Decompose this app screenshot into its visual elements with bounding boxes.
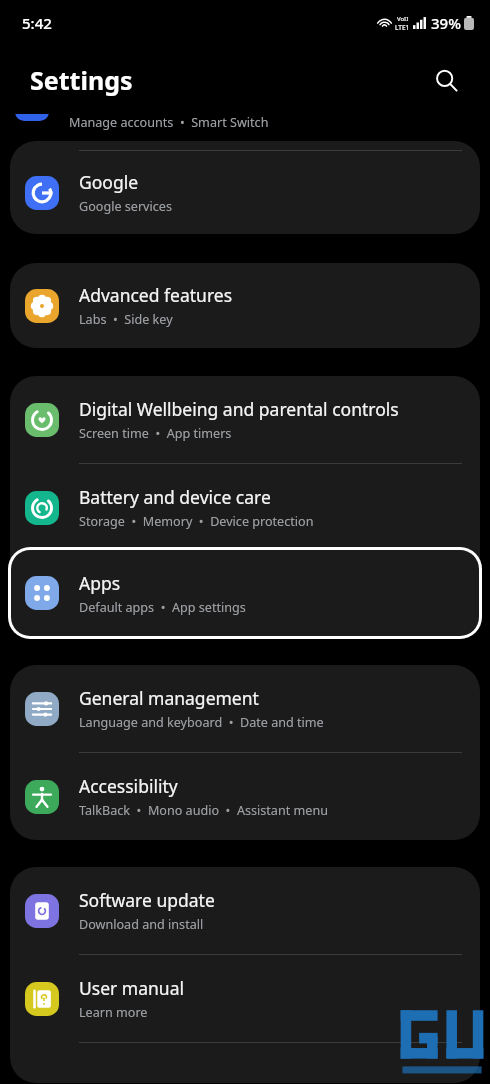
staticText: Language and keyboard • Date and time <box>79 714 324 731</box>
button[interactable]: Battery and device care <box>10 464 480 551</box>
staticText: Apps <box>79 573 121 597</box>
button[interactable]: Digital Wellbeing and parental controls <box>10 376 480 463</box>
staticText: 5:42 <box>22 13 52 33</box>
staticText: Apps <box>79 571 121 595</box>
button[interactable]: Software update <box>10 867 480 954</box>
staticText: Google <box>79 170 139 194</box>
staticText: Default apps • App settings <box>79 601 246 618</box>
staticText: Screen time • App timers <box>79 425 232 442</box>
button[interactable]: General management <box>10 665 480 752</box>
staticText: Battery and device care <box>79 485 271 509</box>
staticText: Labs • Side key <box>79 311 173 328</box>
staticText: Download and install <box>79 916 204 933</box>
staticText: Google services <box>79 198 172 215</box>
button[interactable]: Advanced features <box>10 263 480 348</box>
staticText: Digital Wellbeing and parental controls <box>79 397 399 421</box>
staticText: Accessibility <box>79 774 178 798</box>
button[interactable]: Accessibility <box>10 753 480 840</box>
button[interactable]: Apps <box>10 551 480 639</box>
staticText: VoII <box>397 15 409 23</box>
staticText: 39% <box>431 13 461 33</box>
staticText: General management <box>79 686 259 710</box>
staticText: LTE1 <box>395 23 410 32</box>
button[interactable]: Google <box>10 151 480 234</box>
staticText: TalkBack • Mono audio • Assistant menu <box>79 802 328 819</box>
staticText: User manual <box>79 976 184 1000</box>
staticText: Manage accounts • Smart Switch <box>69 114 269 131</box>
button[interactable]: Apps <box>11 550 479 636</box>
staticText: Default apps • App settings <box>79 599 246 616</box>
staticText: Storage • Memory • Device protection <box>79 513 314 530</box>
staticText: Software update <box>79 888 215 912</box>
staticText: Learn more <box>79 1004 148 1021</box>
staticText: Advanced features <box>79 283 233 307</box>
staticText: Settings <box>30 63 133 97</box>
button[interactable]: User manual <box>10 955 480 1042</box>
button[interactable]: Manage accounts • Smart Switch <box>0 114 490 141</box>
button[interactable]: Search <box>428 62 464 98</box>
